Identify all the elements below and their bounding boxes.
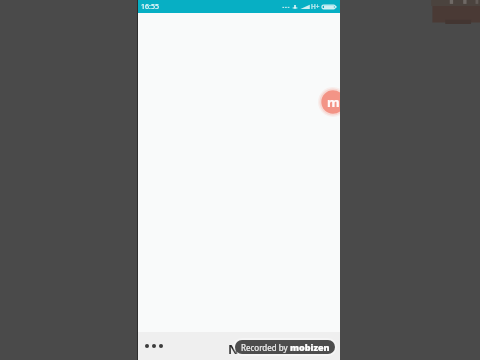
button[interactable]: Recent apps: [142, 340, 166, 352]
staticText: m: [327, 93, 340, 111]
staticText: mobizen: [290, 341, 330, 353]
staticText: Recorded by: [241, 342, 290, 353]
staticText: 16:55: [141, 2, 159, 12]
button[interactable]: Mobizen screen recorder: [318, 87, 340, 117]
staticText: N: [228, 340, 239, 358]
staticText: H+: [311, 2, 320, 11]
